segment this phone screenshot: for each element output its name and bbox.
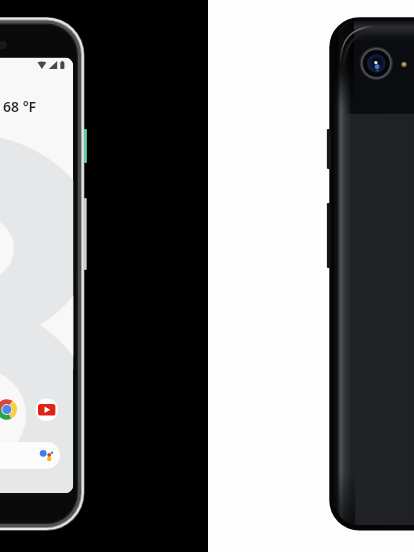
button[interactable]: Chrome (0, 399, 18, 421)
button[interactable]: Search with Google Assistant (0, 442, 60, 469)
staticText: 68 °F (3, 97, 37, 116)
button[interactable]: YouTube (36, 399, 58, 421)
button[interactable]: Back view of the phone, Just Black (208, 0, 414, 552)
button[interactable]: Front view of the phone, Just Black (0, 0, 208, 552)
